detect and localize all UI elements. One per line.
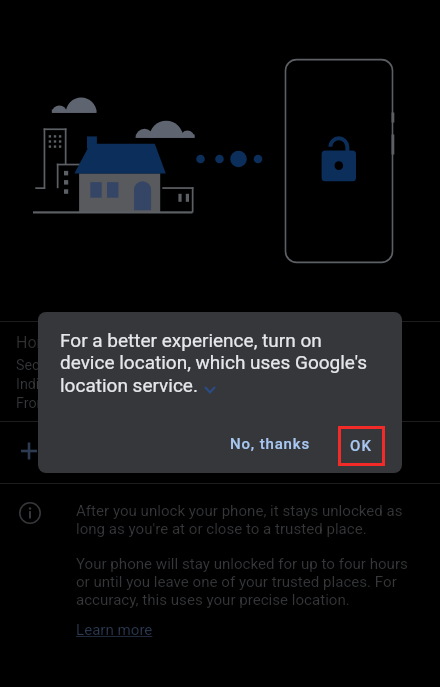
staticText: No, thanks	[230, 435, 311, 453]
staticText: Second Avenue, Indira Nagar, Bengaluru, …	[16, 357, 290, 411]
staticText: Your phone will stay unlocked for up to …	[76, 555, 410, 609]
staticText: OK	[350, 437, 373, 455]
staticText: After you unlock your phone, it stays un…	[76, 502, 410, 538]
staticText: Home	[16, 333, 60, 352]
staticText: For a better experience, turn on device …	[60, 329, 376, 397]
staticText: Learn more	[76, 621, 153, 639]
button[interactable]: No, thanks	[220, 426, 321, 462]
button[interactable]: Home	[0, 322, 440, 425]
button[interactable]: Expand	[197, 366, 223, 392]
button[interactable]: OK	[338, 426, 385, 466]
button[interactable]: Learn more	[76, 621, 153, 639]
button[interactable]: Add trusted place	[0, 422, 440, 480]
